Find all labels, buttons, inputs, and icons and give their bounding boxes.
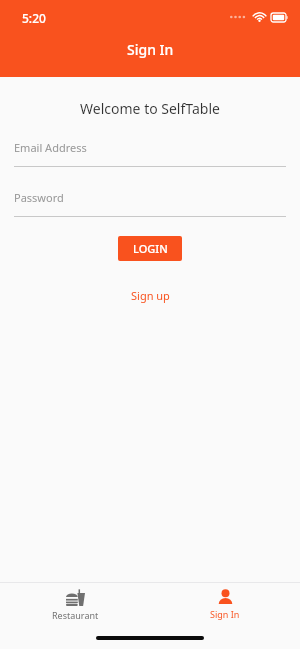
staticText: LOGIN (133, 241, 168, 256)
staticText: Restaurant (52, 609, 99, 621)
button[interactable]: Sign up (123, 284, 178, 307)
button[interactable]: Sign In (150, 583, 300, 626)
button[interactable]: Email Address (14, 140, 286, 167)
staticText: Sign up (131, 288, 170, 303)
staticText: Sign In (210, 608, 240, 620)
button[interactable]: Restaurant (0, 583, 150, 626)
staticText: Password (14, 190, 64, 205)
staticText: 5:20 (22, 10, 46, 26)
staticText: Email Address (14, 140, 87, 155)
button[interactable]: LOGIN (118, 236, 182, 261)
button[interactable]: Password (14, 190, 286, 217)
staticText: Welcome to SelfTable (0, 99, 300, 118)
staticText: Sign In (127, 40, 174, 59)
